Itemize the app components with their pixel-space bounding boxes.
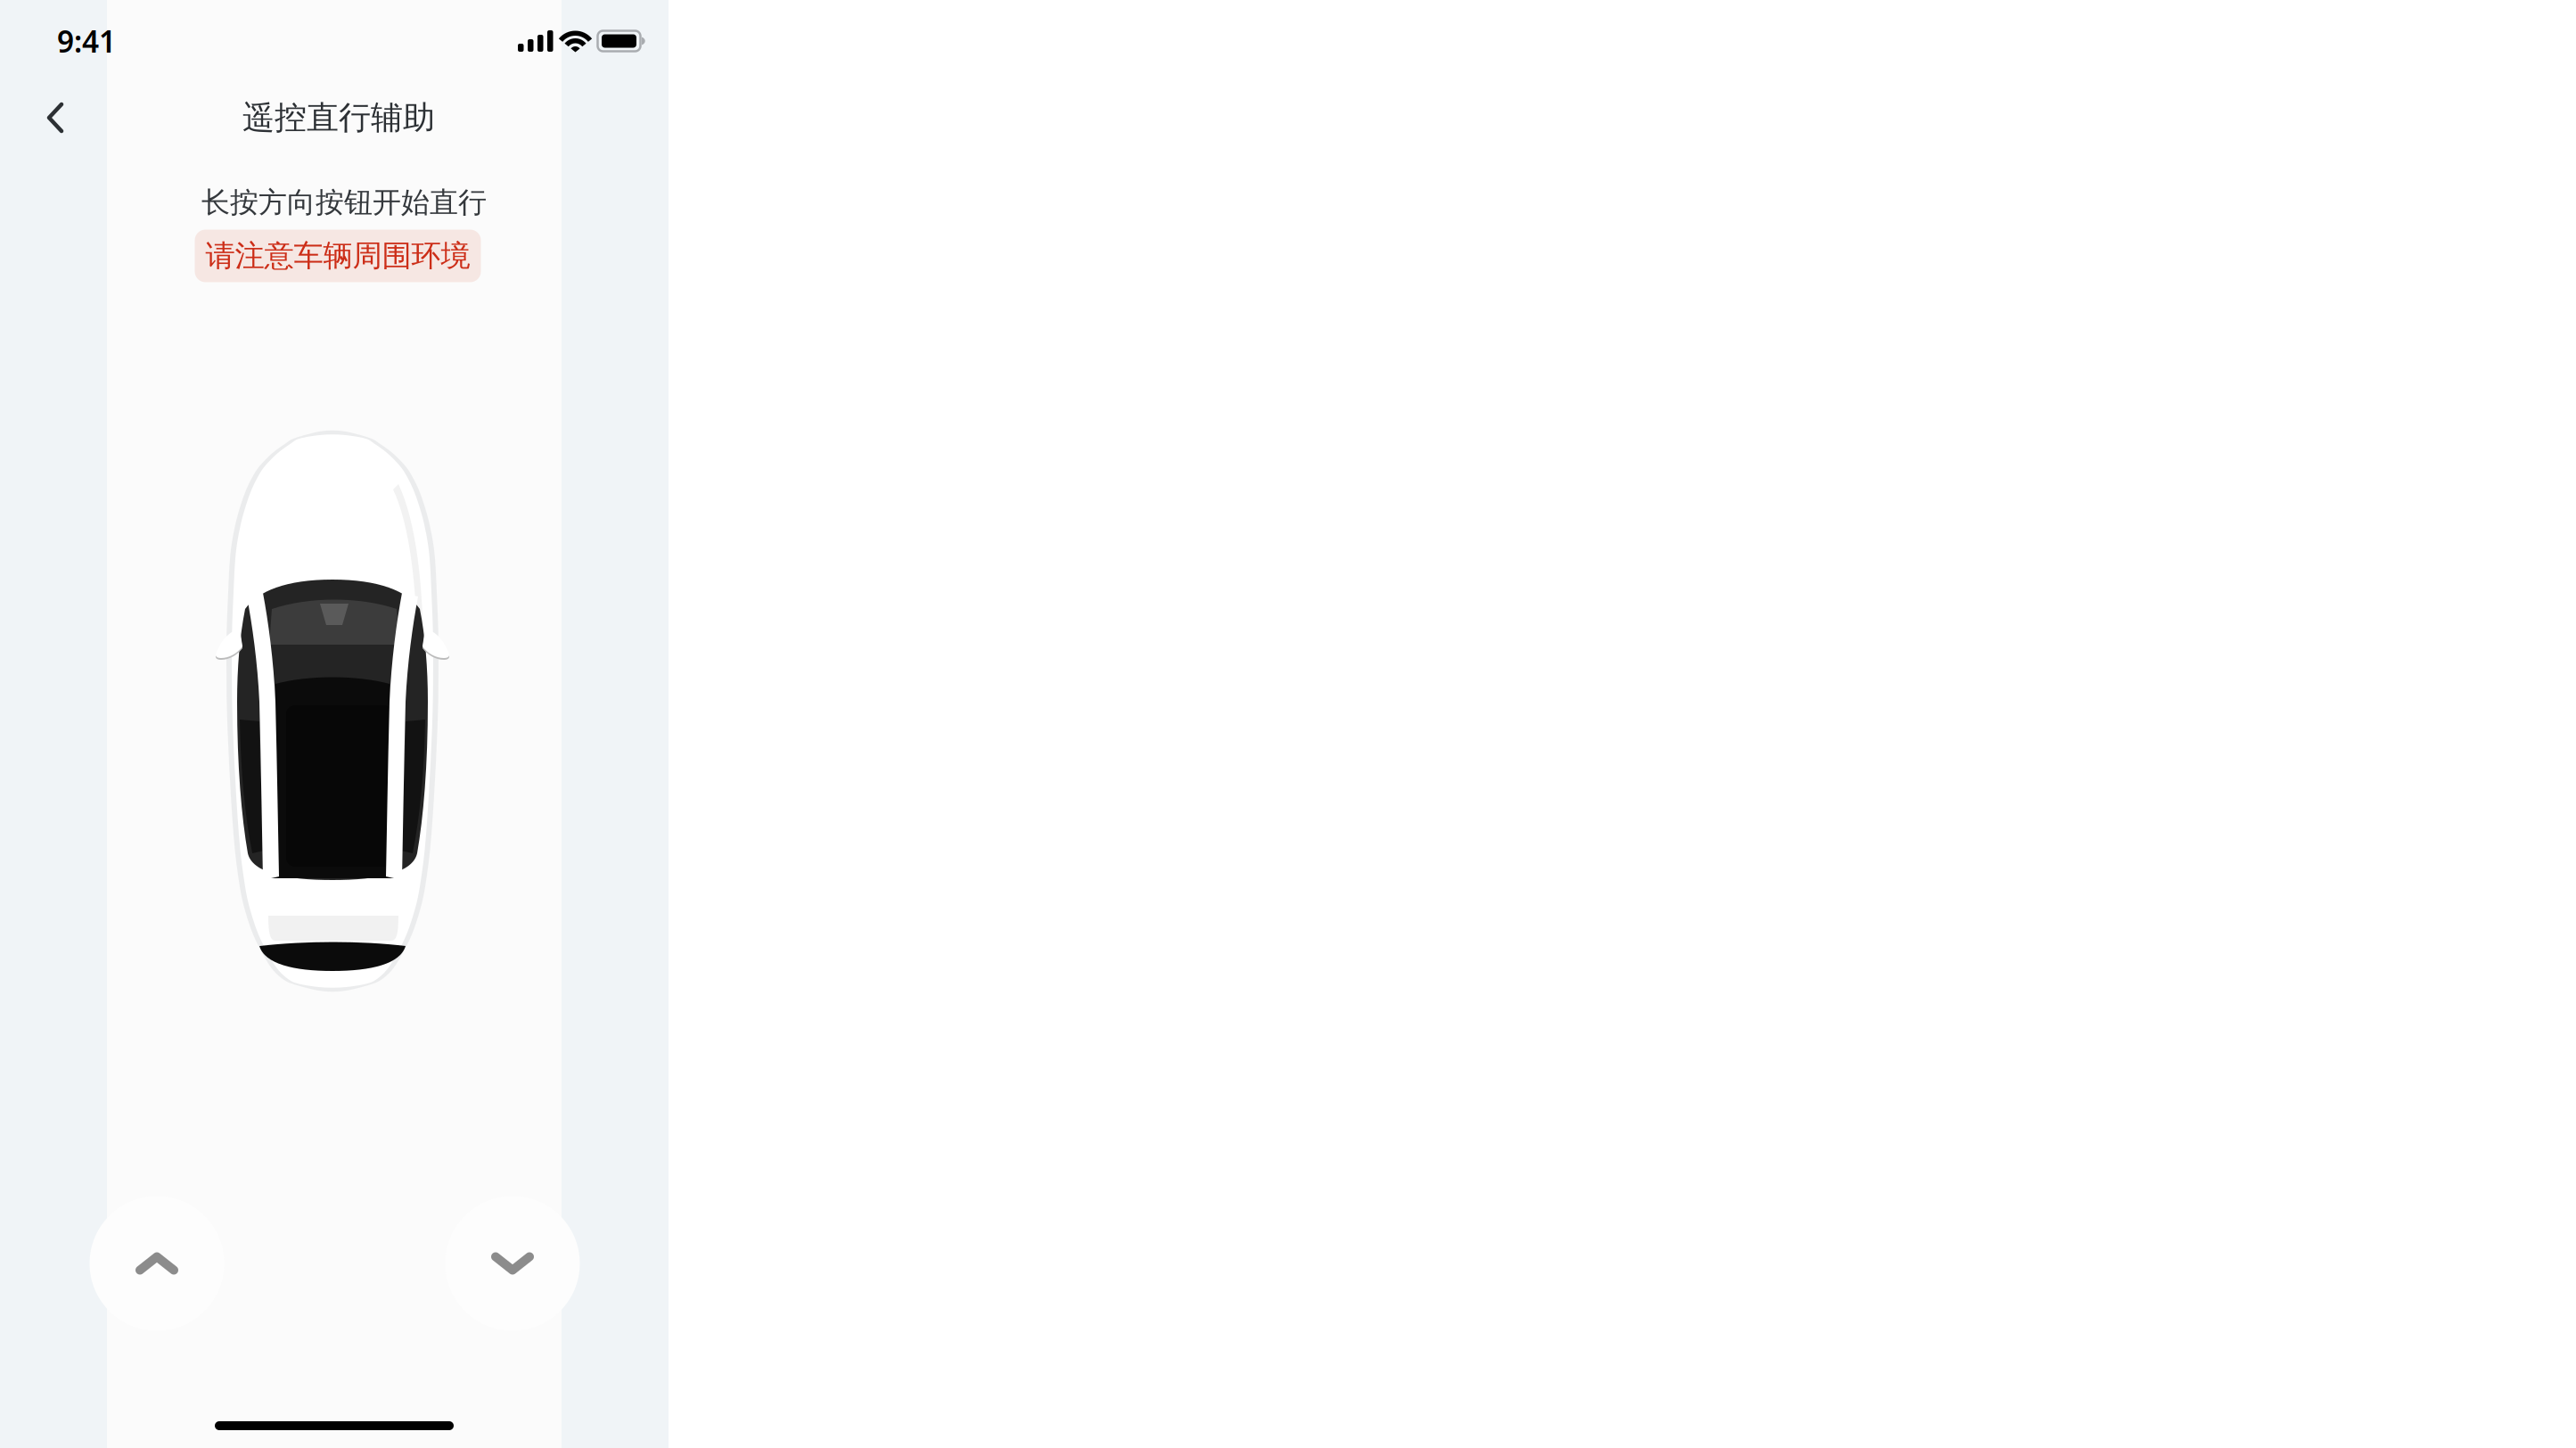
staticText: 遥控直行辅助 [242, 98, 435, 137]
staticText: 长按方向按钮开始直行 [201, 185, 487, 220]
button[interactable]: 向后直行 [445, 1196, 580, 1331]
staticText: 9:41 [57, 21, 116, 61]
staticText: 请注意车辆周围环境 [205, 238, 470, 274]
button[interactable]: 返回 [26, 88, 85, 147]
button[interactable]: 向前直行 [90, 1196, 224, 1331]
